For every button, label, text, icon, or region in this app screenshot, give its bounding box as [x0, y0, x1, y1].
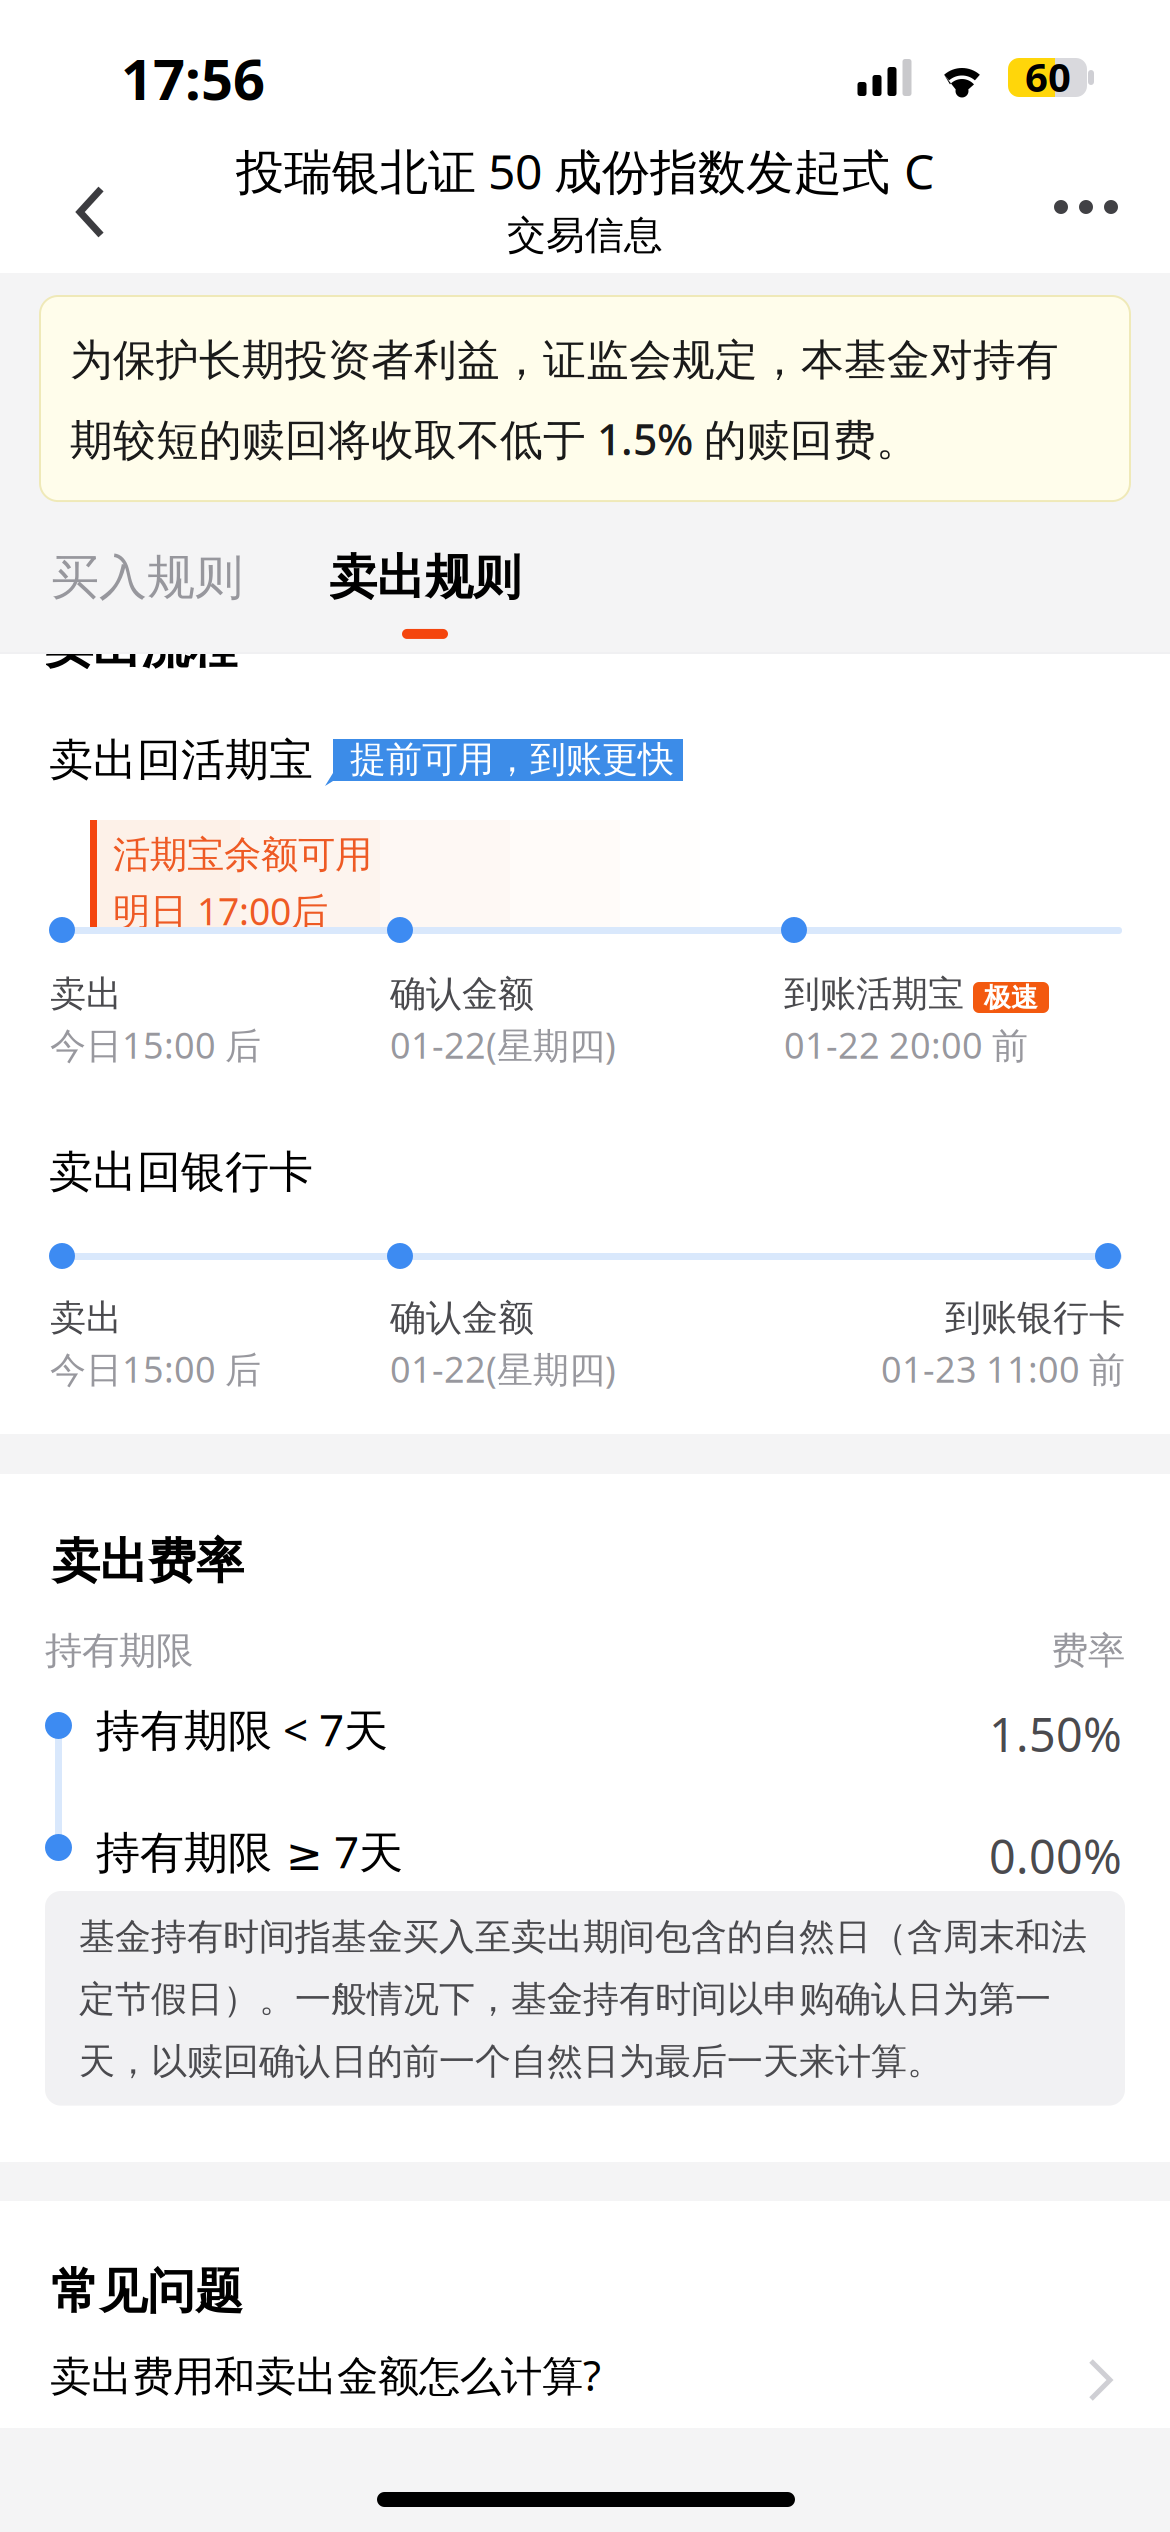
staticText: 明日 17:00后 — [113, 886, 328, 935]
staticText: 今日15:00 后 — [50, 1021, 261, 1069]
staticText: 到账银行卡 — [945, 1296, 1125, 1340]
staticText: 1.50% — [989, 1703, 1122, 1765]
staticText: 买入规则 — [51, 548, 243, 607]
staticText: 为保护长期投资者利益，证监会规定，本基金对持有期较短的赎回将收取不低于 1.5%… — [70, 334, 1059, 467]
button[interactable]: 卖出规则 — [323, 540, 527, 639]
staticText: 0.00% — [989, 1825, 1122, 1887]
staticText: 确认金额 — [390, 1296, 534, 1340]
staticText: 卖出费用和卖出金额怎么计算? — [50, 2348, 601, 2402]
staticText: 01-23 11:00 前 — [881, 1345, 1125, 1393]
staticText: 基金持有时间指基金买入至卖出期间包含的自然日（含周末和法定节假日）。一般情况下，… — [79, 1915, 1087, 2084]
staticText: 持有期限 ≥ 7天 — [96, 1822, 403, 1880]
staticText: 卖出规则 — [329, 548, 521, 607]
staticText: 极速 — [984, 981, 1038, 1014]
staticText: 持有期限 — [45, 1628, 193, 1674]
staticText: 卖出流程 — [45, 617, 237, 676]
staticText: 卖出 — [50, 1296, 122, 1340]
staticText: 卖出回活期宝 — [49, 733, 313, 787]
staticText: 到账活期宝 — [784, 972, 964, 1016]
button[interactable]: 更多 — [1032, 178, 1140, 236]
staticText: 今日15:00 后 — [50, 1345, 261, 1393]
button[interactable]: 卖出费用和卖出金额怎么计算? — [0, 2330, 1170, 2420]
staticText: 持有期限 < 7天 — [96, 1700, 388, 1758]
button[interactable]: 买入规则 — [45, 540, 249, 615]
staticText: 活期宝余额可用 — [113, 832, 372, 878]
staticText: 01-22 20:00 前 — [784, 1021, 1028, 1069]
staticText: 17:56 — [121, 41, 265, 115]
staticText: 确认金额 — [390, 972, 534, 1016]
staticText: 提前可用，到账更快 — [350, 737, 674, 782]
staticText: 常见问题 — [51, 2262, 243, 2321]
staticText: 卖出 — [50, 972, 122, 1016]
staticText: 卖出回银行卡 — [49, 1145, 313, 1199]
staticText: 交易信息 — [507, 212, 663, 259]
button[interactable]: 返回 — [53, 163, 128, 261]
staticText: 费率 — [1051, 1628, 1125, 1674]
staticText: 卖出费率 — [52, 1532, 244, 1591]
staticText: 60 — [1025, 50, 1071, 103]
staticText: 投瑞银北证 50 成份指数发起式 C — [236, 139, 934, 203]
staticText: 01-22(星期四) — [390, 1345, 616, 1393]
staticText: 01-22(星期四) — [390, 1021, 616, 1069]
